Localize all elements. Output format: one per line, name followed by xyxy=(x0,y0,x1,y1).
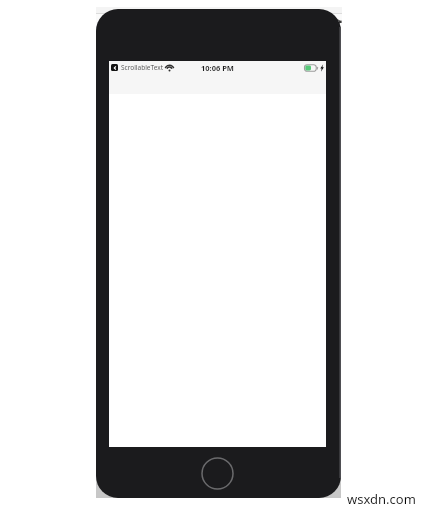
staticText: wsxdn.com xyxy=(347,490,416,508)
button[interactable]: Back xyxy=(111,64,118,71)
staticText: 10:06 PM xyxy=(201,63,234,73)
button[interactable]: Home xyxy=(201,457,234,490)
staticText: ScrollableText xyxy=(121,63,163,72)
